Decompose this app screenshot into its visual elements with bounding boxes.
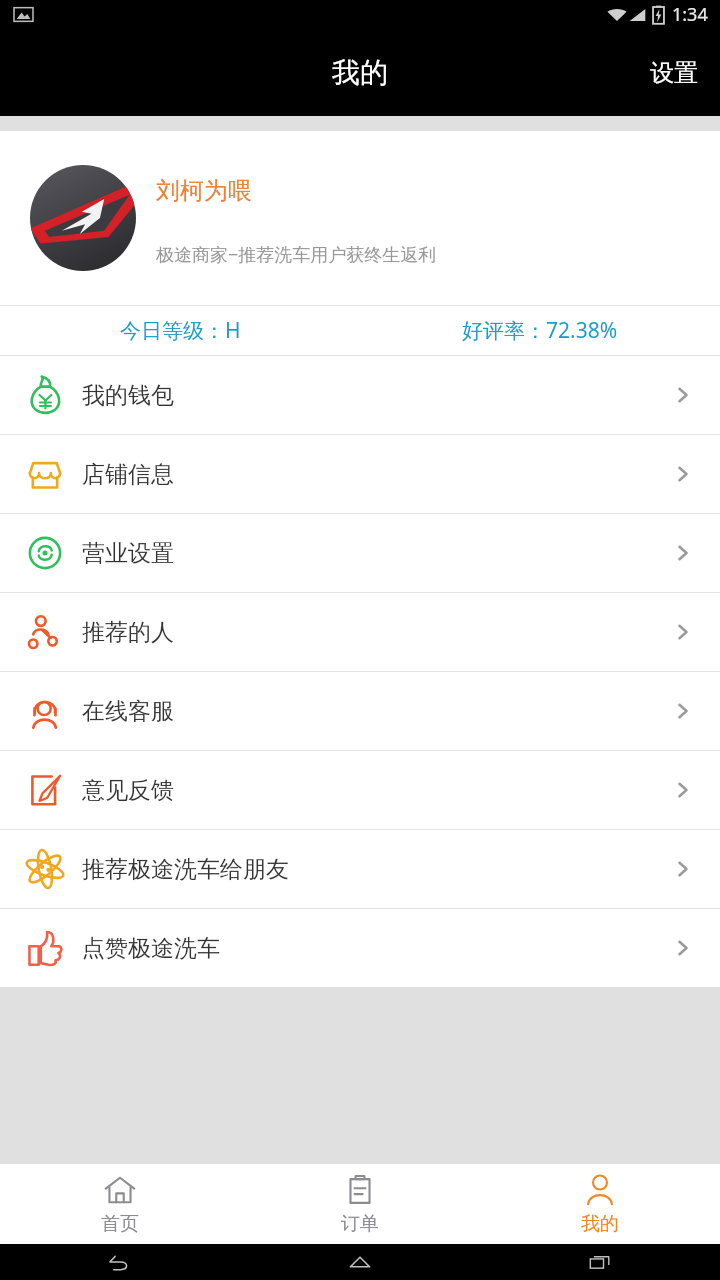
button[interactable]: 推荐极途洗车给朋友 [0, 830, 720, 908]
staticText: 意见反馈 [82, 776, 672, 805]
staticText: 1:34 [672, 2, 708, 27]
button[interactable]: Back [0, 1244, 240, 1280]
staticText: 我的 [332, 55, 388, 90]
button[interactable]: 点赞极途洗车 [0, 909, 720, 987]
button[interactable]: 设置 [628, 29, 720, 116]
button[interactable]: Recent apps [480, 1244, 720, 1280]
staticText: 我的钱包 [82, 381, 672, 410]
staticText: 极途商家−推荐洗车用户获终生返利 [156, 242, 437, 267]
staticText: 营业设置 [82, 539, 672, 568]
button[interactable]: Home [240, 1244, 480, 1280]
staticText: 刘柯为喂 [156, 176, 252, 206]
staticText: 首页 [101, 1212, 139, 1236]
button[interactable]: 首页 [0, 1164, 240, 1244]
staticText: 推荐极途洗车给朋友 [82, 855, 672, 884]
button[interactable]: 在线客服 [0, 672, 720, 750]
staticText: 我的 [581, 1212, 619, 1236]
staticText: 店铺信息 [82, 460, 672, 489]
staticText: 推荐的人 [82, 618, 672, 647]
button[interactable]: 意见反馈 [0, 751, 720, 829]
staticText: 好评率：72.38% [462, 316, 618, 345]
staticText: 订单 [341, 1212, 379, 1236]
button[interactable]: 营业设置 [0, 514, 720, 592]
staticText: 设置 [650, 58, 698, 88]
button[interactable]: 我的 [480, 1164, 720, 1244]
button[interactable]: 我的钱包 [0, 356, 720, 434]
staticText: 在线客服 [82, 697, 672, 726]
button[interactable]: 刘柯为喂 [0, 131, 720, 305]
button[interactable]: 店铺信息 [0, 435, 720, 513]
button[interactable]: 订单 [240, 1164, 480, 1244]
staticText: 今日等级：H [120, 316, 241, 345]
button[interactable]: 推荐的人 [0, 593, 720, 671]
staticText: 点赞极途洗车 [82, 934, 672, 963]
